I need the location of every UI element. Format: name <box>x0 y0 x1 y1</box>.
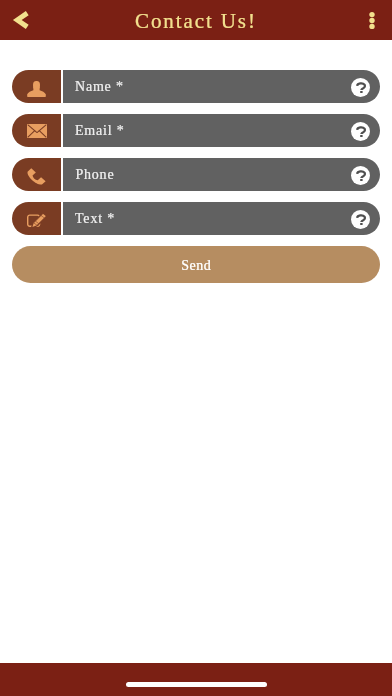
staticText: Text * <box>75 211 115 227</box>
staticText: Contact Us! <box>135 9 257 32</box>
staticText: Send <box>181 258 211 274</box>
staticText: Name * <box>75 79 124 95</box>
button[interactable]: Help <box>351 122 370 141</box>
staticText: Phone <box>75 167 114 183</box>
button[interactable]: Send <box>12 246 380 283</box>
button[interactable]: Help <box>351 166 370 185</box>
button[interactable]: More options <box>352 0 392 40</box>
button[interactable]: Email * <box>12 114 380 147</box>
button[interactable]: Help <box>351 78 370 97</box>
button[interactable]: Text * <box>12 202 380 235</box>
button[interactable]: Back <box>0 0 41 40</box>
button[interactable]: Phone <box>12 158 380 191</box>
staticText: Email * <box>75 123 125 139</box>
button[interactable]: Name * <box>12 70 380 103</box>
button[interactable]: Help <box>351 210 370 229</box>
